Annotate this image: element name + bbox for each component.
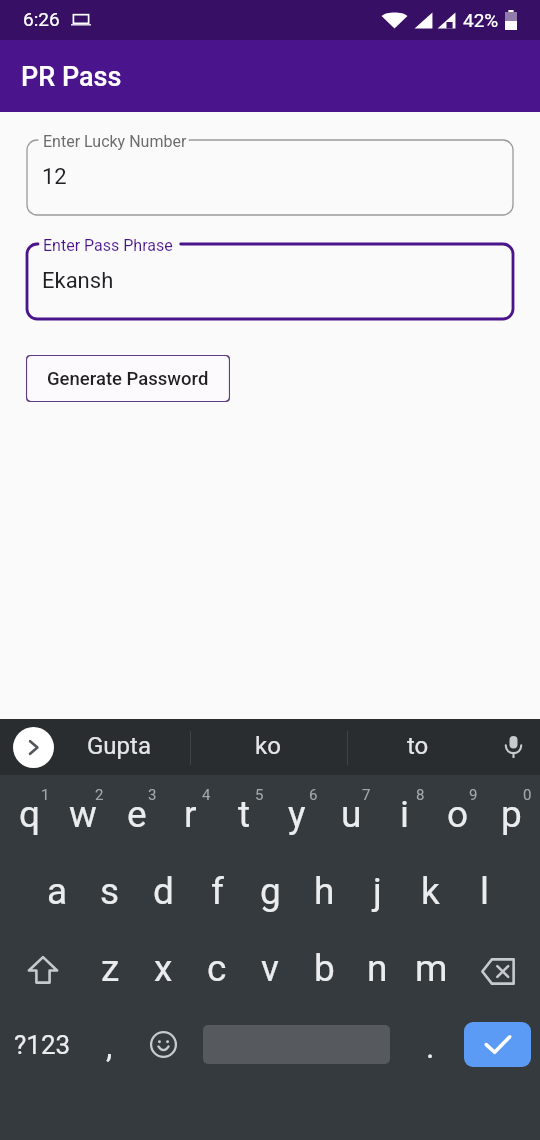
staticText: h <box>314 870 335 913</box>
button[interactable]: to <box>358 718 478 774</box>
button[interactable]: Enter Lucky Number <box>27 140 513 215</box>
button[interactable]: Enter Pass Phrase <box>27 244 513 319</box>
staticText: j <box>373 870 382 913</box>
staticText: 5 <box>255 786 264 804</box>
button[interactable]: Gupta <box>59 718 179 774</box>
staticText: s <box>100 870 120 913</box>
button[interactable]: s <box>83 863 137 919</box>
button[interactable]: Emoji <box>136 1014 190 1074</box>
staticText: e <box>127 793 147 836</box>
staticText: q <box>19 793 41 836</box>
button[interactable]: ko <box>208 718 328 774</box>
staticText: i <box>400 793 409 836</box>
button[interactable]: i <box>377 786 431 842</box>
button[interactable]: h <box>297 863 351 919</box>
button[interactable]: , <box>82 1015 136 1075</box>
button[interactable]: l <box>457 863 511 919</box>
staticText: k <box>421 870 440 913</box>
staticText: y <box>288 793 306 836</box>
staticText: 4 <box>202 786 211 804</box>
staticText: f <box>211 870 224 913</box>
button[interactable]: Expand suggestions <box>13 727 54 768</box>
button[interactable]: y <box>270 786 324 842</box>
staticText: c <box>207 947 227 990</box>
staticText: 3 <box>148 786 157 804</box>
staticText: 12 <box>42 164 67 190</box>
staticText: 6:26 <box>23 8 60 30</box>
staticText: 42% <box>463 9 499 31</box>
staticText: , <box>106 1027 113 1065</box>
button[interactable]: z <box>83 940 137 996</box>
staticText: l <box>480 870 489 913</box>
staticText: r <box>184 793 197 836</box>
staticText: 9 <box>469 786 478 804</box>
staticText: m <box>415 947 448 990</box>
button[interactable]: Voice input <box>501 734 526 759</box>
staticText: . <box>426 1028 435 1066</box>
button[interactable]: . <box>403 1015 457 1075</box>
button[interactable]: g <box>243 863 297 919</box>
button[interactable]: q <box>3 786 57 842</box>
button[interactable]: n <box>350 940 404 996</box>
staticText: z <box>101 947 120 990</box>
staticText: Enter Lucky Number <box>43 132 187 151</box>
button[interactable]: j <box>350 863 404 919</box>
button[interactable]: Generate Password <box>26 355 230 402</box>
staticText: n <box>367 947 388 990</box>
button[interactable]: p <box>484 786 538 842</box>
staticText: 1 <box>41 786 50 804</box>
button[interactable]: a <box>30 863 84 919</box>
staticText: Generate Password <box>47 368 209 390</box>
staticText: a <box>47 870 68 913</box>
staticText: 6 <box>309 786 318 804</box>
button[interactable]: x <box>136 940 190 996</box>
button[interactable]: Enter <box>464 1022 531 1067</box>
staticText: o <box>447 793 469 836</box>
staticText: t <box>238 793 251 836</box>
staticText: g <box>260 870 281 913</box>
button[interactable]: m <box>404 940 458 996</box>
button[interactable]: e <box>110 786 164 842</box>
button[interactable]: b <box>297 940 351 996</box>
button[interactable]: v <box>243 940 297 996</box>
staticText: ?123 <box>14 1030 71 1060</box>
staticText: Enter Pass Phrase <box>43 236 173 255</box>
staticText: 7 <box>362 786 371 804</box>
button[interactable]: Backspace <box>470 941 525 1001</box>
staticText: PR Pass <box>21 61 122 93</box>
button[interactable]: o <box>431 786 485 842</box>
button[interactable]: c <box>190 940 244 996</box>
staticText: to <box>407 732 429 760</box>
staticText: 8 <box>416 786 425 804</box>
staticText: v <box>261 947 279 990</box>
button[interactable]: u <box>324 786 378 842</box>
staticText: w <box>69 793 97 836</box>
button[interactable]: f <box>190 863 244 919</box>
button[interactable]: Shift <box>15 940 70 1000</box>
staticText: ko <box>255 732 281 760</box>
staticText: Gupta <box>87 732 151 760</box>
staticText: Ekansh <box>42 268 114 294</box>
staticText: 2 <box>95 786 104 804</box>
staticText: x <box>154 947 173 990</box>
staticText: u <box>341 793 362 836</box>
button[interactable]: ?123 <box>0 1015 85 1075</box>
button[interactable]: d <box>136 863 190 919</box>
button[interactable]: w <box>56 786 110 842</box>
button[interactable]: k <box>403 863 457 919</box>
staticText: 0 <box>523 786 532 804</box>
button[interactable]: t <box>217 786 271 842</box>
staticText: p <box>501 793 522 836</box>
staticText: b <box>314 947 335 990</box>
button[interactable]: r <box>163 786 217 842</box>
staticText: d <box>153 870 174 913</box>
